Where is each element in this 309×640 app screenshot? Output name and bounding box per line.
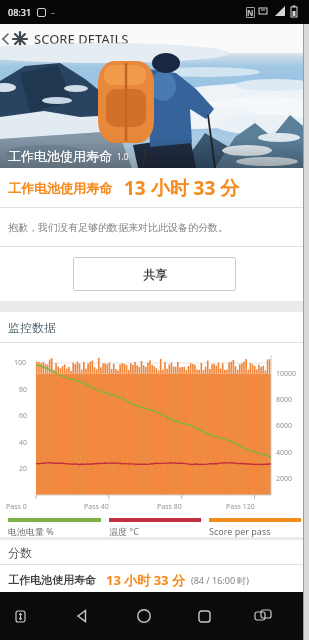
- staticText: 温度 °C: [109, 525, 139, 537]
- staticText: 100: [14, 358, 27, 368]
- staticText: Pass 120: [226, 502, 255, 512]
- button[interactable]: 共享: [73, 257, 236, 291]
- staticText: 工作电池使用寿命: [8, 180, 112, 196]
- button[interactable]: [40, 592, 124, 640]
- staticText: Pass 40: [84, 502, 109, 512]
- staticText: 8000: [276, 395, 293, 405]
- staticText: 监控数据: [8, 320, 56, 335]
- staticText: 工作电池使用寿命: [8, 573, 96, 587]
- staticText: 4000: [276, 448, 293, 458]
- staticText: 2000: [276, 474, 293, 484]
- staticText: Pass 0: [6, 502, 27, 512]
- staticText: 08:31: [8, 6, 32, 18]
- staticText: Pass 80: [157, 502, 182, 512]
- button[interactable]: SCORE DETAILS: [0, 24, 309, 53]
- staticText: 6000: [276, 421, 293, 431]
- button[interactable]: 温度 °C: [109, 518, 201, 537]
- staticText: 40: [19, 438, 28, 448]
- button[interactable]: [244, 592, 282, 640]
- staticText: 80: [19, 385, 28, 395]
- button[interactable]: 工作电池使用寿命: [0, 168, 309, 207]
- staticText: 共享: [143, 267, 167, 282]
- button[interactable]: [0, 592, 40, 640]
- staticText: 工作电池使用寿命: [8, 148, 112, 164]
- staticText: 抱歉，我们没有足够的数据来对比此设备的分数。: [8, 221, 228, 234]
- staticText: 20: [19, 464, 28, 474]
- staticText: 分数: [8, 545, 32, 560]
- staticText: 电池电量 %: [8, 525, 54, 537]
- staticText: N: [247, 7, 254, 18]
- button[interactable]: Score per pass: [209, 518, 301, 537]
- staticText: 13 小时 33 分: [106, 571, 185, 589]
- staticText: SCORE DETAILS: [34, 30, 129, 48]
- staticText: 10000: [276, 369, 297, 379]
- staticText: 60: [19, 411, 28, 421]
- button[interactable]: [164, 592, 244, 640]
- staticText: 1.0: [117, 151, 129, 162]
- staticText: (84 / 16:00 时): [191, 574, 250, 586]
- staticText: Score per pass: [209, 525, 271, 537]
- button[interactable]: 电池电量 %: [8, 518, 101, 537]
- button[interactable]: [124, 592, 164, 640]
- staticText: –: [51, 7, 55, 18]
- button[interactable]: 工作电池使用寿命: [0, 565, 309, 595]
- staticText: 13 小时 33 分: [124, 175, 240, 201]
